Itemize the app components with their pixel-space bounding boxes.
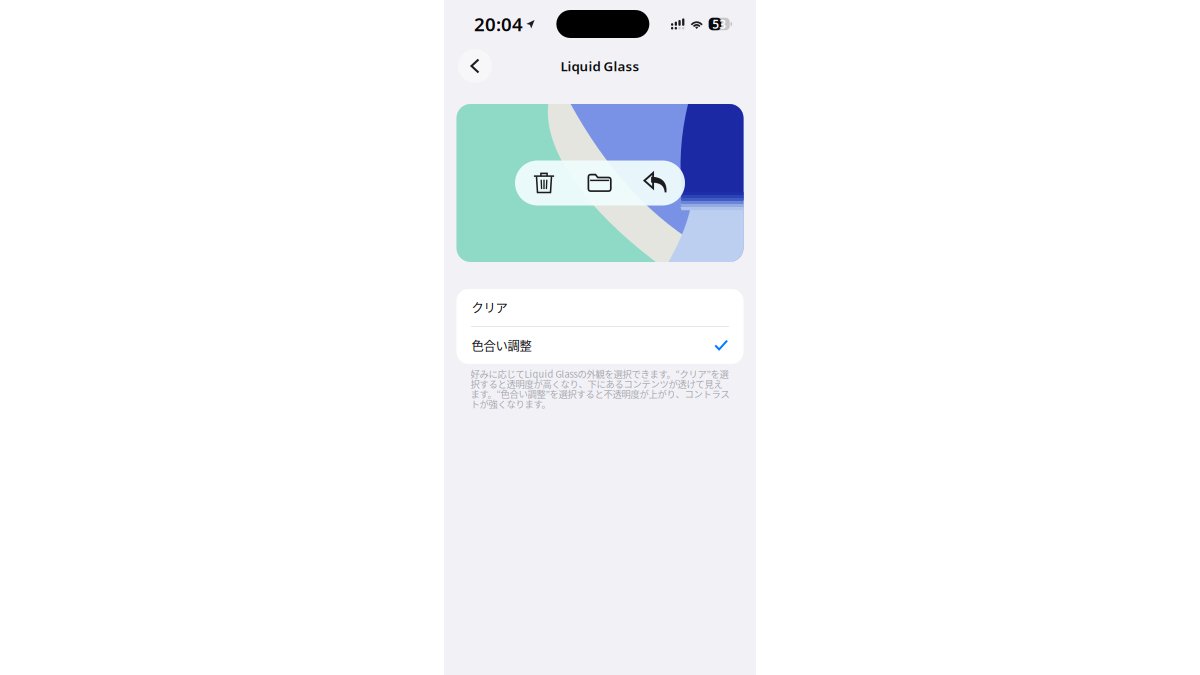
button[interactable]: 色合い調整 xyxy=(456,327,743,364)
button[interactable]: Back xyxy=(458,49,492,83)
button[interactable]: Liquid Glass toolbar preview xyxy=(515,160,685,205)
staticText: 20:04 xyxy=(474,12,523,36)
staticText: Liquid Glass xyxy=(560,57,639,75)
staticText: クリア xyxy=(471,299,507,316)
staticText: 色合い調整 xyxy=(471,336,531,354)
staticText: 53 xyxy=(712,16,726,32)
button[interactable]: クリア xyxy=(456,289,743,326)
staticText: 好みに応じてLiquid Glassの外観を選択できます。“クリア”を選択すると… xyxy=(470,367,729,410)
